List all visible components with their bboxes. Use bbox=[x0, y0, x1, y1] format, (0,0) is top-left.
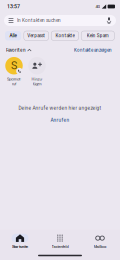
button[interactable]: Kein Spam bbox=[81, 31, 114, 40]
staticText: Sperrnot- bbox=[7, 77, 21, 81]
button[interactable]: Mailbox bbox=[80, 230, 120, 251]
staticText: Hinzu- bbox=[31, 77, 42, 81]
button[interactable]: Verpasst bbox=[24, 31, 49, 40]
button[interactable]: Kontakte anzeigen bbox=[70, 46, 116, 55]
staticText: Kontakte anzeigen bbox=[74, 48, 112, 53]
staticText: Kontakte bbox=[55, 33, 74, 38]
staticText: ruf bbox=[12, 82, 16, 86]
button[interactable]: Startseite bbox=[0, 230, 40, 251]
staticText: S bbox=[11, 59, 17, 72]
staticText: 4G bbox=[95, 4, 100, 9]
staticText: Kein Spam bbox=[87, 33, 109, 38]
staticText: Deine Anrufe werden hier angezeigt bbox=[18, 105, 101, 111]
staticText: 13:57 bbox=[7, 3, 20, 10]
staticText: Verpasst bbox=[27, 33, 45, 38]
button[interactable]: Tastenfeld bbox=[40, 230, 80, 251]
button[interactable]: Favoriten bbox=[6, 45, 31, 55]
staticText: In Kontakten suchen bbox=[17, 18, 61, 23]
staticText: Startseite bbox=[12, 244, 28, 249]
staticText: Tastenfeld bbox=[51, 244, 68, 249]
button[interactable]: S bbox=[3, 57, 25, 86]
button[interactable]: Alle bbox=[5, 31, 21, 40]
button[interactable]: Kontakte bbox=[51, 31, 79, 40]
staticText: fügen bbox=[32, 82, 41, 86]
staticText: Mailbox bbox=[93, 244, 106, 249]
staticText: Anrufen bbox=[50, 117, 69, 123]
staticText: Favoriten bbox=[6, 47, 26, 53]
button[interactable]: Hinzu- bbox=[26, 57, 48, 86]
button[interactable]: In Kontakten suchen bbox=[4, 15, 116, 26]
staticText: Alle bbox=[10, 33, 17, 38]
button[interactable]: Anrufen bbox=[45, 116, 74, 124]
